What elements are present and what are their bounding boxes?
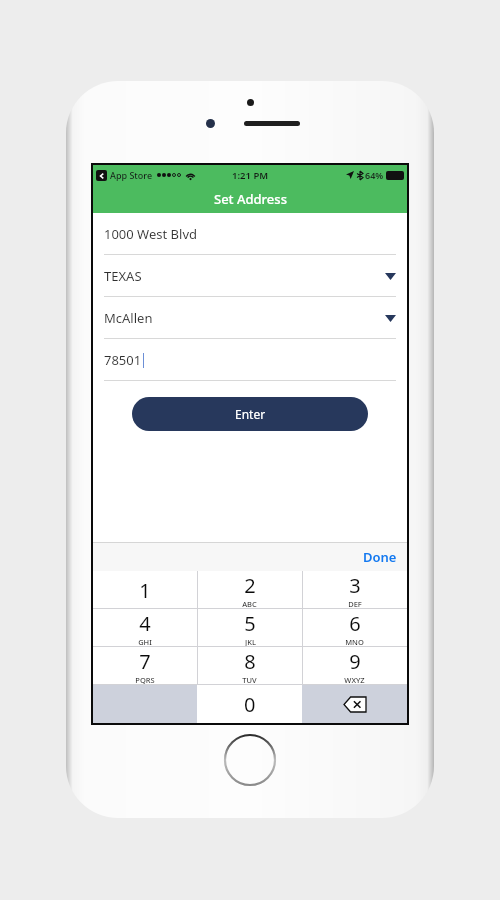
staticText: 78501 xyxy=(104,351,142,369)
button[interactable]: Enter xyxy=(132,397,368,431)
button[interactable]: Done xyxy=(353,544,407,570)
staticText: ABC xyxy=(242,599,257,609)
staticText: 9 xyxy=(349,648,361,675)
button[interactable]: 78501 xyxy=(93,339,407,381)
button[interactable]: 0 xyxy=(197,685,302,723)
staticText: Set Address xyxy=(214,190,287,208)
staticText: MNO xyxy=(345,637,364,647)
staticText: 3 xyxy=(349,572,361,599)
button[interactable]: 9 xyxy=(302,647,407,685)
staticText: 4 xyxy=(139,610,151,637)
staticText: 5 xyxy=(244,610,256,637)
staticText: 64% xyxy=(365,169,384,181)
button[interactable]: 4 xyxy=(93,609,197,647)
staticText: 7 xyxy=(139,648,151,675)
staticText: 1:21 PM xyxy=(232,169,269,182)
staticText: 1 xyxy=(139,577,151,604)
button[interactable]: 7 xyxy=(93,647,197,685)
staticText: TEXAS xyxy=(104,267,142,285)
button[interactable]: TEXAS xyxy=(93,255,407,297)
button[interactable]: 3 xyxy=(302,571,407,609)
staticText: DEF xyxy=(348,599,362,609)
button[interactable]: 1 xyxy=(93,571,197,609)
button[interactable]: 5 xyxy=(197,609,302,647)
staticText: WXYZ xyxy=(344,675,365,685)
staticText: 8 xyxy=(244,648,256,675)
staticText: JKL xyxy=(245,637,256,647)
button[interactable]: 2 xyxy=(197,571,302,609)
staticText: 2 xyxy=(244,572,256,599)
staticText: Done xyxy=(363,548,397,566)
staticText: TUV xyxy=(242,675,257,685)
staticText: App Store xyxy=(110,169,153,181)
staticText: GHI xyxy=(138,637,152,647)
staticText: PQRS xyxy=(135,675,155,685)
button[interactable]: Backspace xyxy=(302,685,407,723)
staticText: McAllen xyxy=(104,309,153,327)
staticText: 0 xyxy=(244,691,256,718)
button[interactable]: 1000 West Blvd xyxy=(93,213,407,255)
button[interactable]: McAllen xyxy=(93,297,407,339)
staticText: 6 xyxy=(349,610,361,637)
staticText: 1000 West Blvd xyxy=(104,225,197,243)
staticText: Enter xyxy=(235,406,266,422)
button[interactable]: 8 xyxy=(197,647,302,685)
button[interactable]: 6 xyxy=(302,609,407,647)
